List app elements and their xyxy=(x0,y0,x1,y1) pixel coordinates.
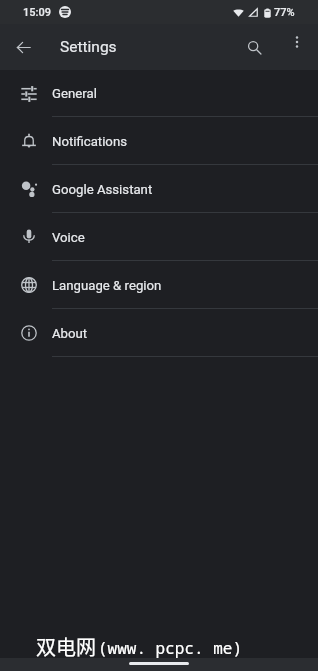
staticText: 15:09 xyxy=(23,6,51,19)
button[interactable]: About xyxy=(0,309,318,357)
staticText: 双电网 xyxy=(36,632,96,661)
staticText: Language & region xyxy=(52,278,162,293)
staticText: Settings xyxy=(60,38,117,56)
staticText: (www. pcpc. me) xyxy=(98,637,243,659)
staticText: About xyxy=(52,326,88,341)
button[interactable]: Back xyxy=(3,27,43,67)
button[interactable]: Google Assistant xyxy=(0,165,318,213)
button[interactable]: More options xyxy=(279,24,314,59)
button[interactable]: Notifications xyxy=(0,117,318,165)
button[interactable]: General xyxy=(0,70,318,117)
staticText: Voice xyxy=(52,230,85,245)
button[interactable]: Search xyxy=(229,24,279,70)
button[interactable]: Language & region xyxy=(0,261,318,309)
staticText: 77% xyxy=(274,6,295,19)
staticText: General xyxy=(52,86,97,101)
button[interactable]: Voice xyxy=(0,213,318,261)
staticText: Google Assistant xyxy=(52,182,153,197)
staticText: Notifications xyxy=(52,134,127,149)
